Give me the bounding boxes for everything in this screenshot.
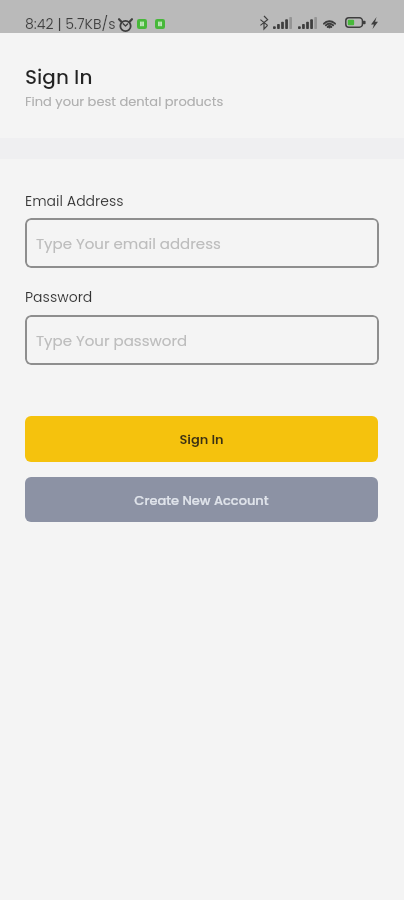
staticText: Sign In — [179, 430, 224, 448]
button[interactable]: Type Your password — [25, 315, 379, 365]
staticText: Find your best dental products — [25, 92, 224, 110]
other: Running app — [137, 19, 147, 29]
other: Mobile signal — [273, 17, 292, 29]
button[interactable]: Type Your email address — [25, 218, 379, 268]
staticText: Create New Account — [134, 491, 269, 509]
other: Running app — [155, 19, 165, 29]
other: Wi-Fi — [322, 17, 337, 29]
staticText: Type Your password — [36, 330, 188, 351]
other: Alarm set — [118, 17, 133, 32]
other: Mobile signal — [298, 17, 317, 29]
staticText: Type Your email address — [36, 233, 221, 254]
other: Charging — [371, 17, 378, 29]
staticText: Sign In — [25, 63, 93, 91]
button[interactable]: Create New Account — [25, 477, 378, 522]
staticText: Email Address — [25, 191, 124, 211]
staticText: Password — [25, 287, 93, 307]
staticText: 8:42 | 5.7KB/s — [25, 14, 116, 34]
other: Battery charging — [345, 17, 366, 28]
other: Bluetooth — [260, 16, 268, 29]
button[interactable]: Sign In — [25, 416, 378, 462]
